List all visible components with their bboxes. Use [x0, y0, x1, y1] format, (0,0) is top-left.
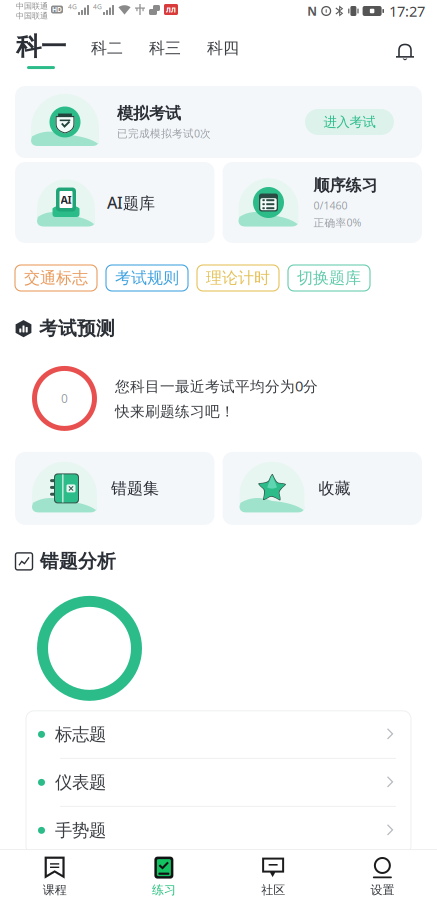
staticText: 中国联通 — [16, 1, 48, 11]
staticText: 切换题库 — [297, 268, 361, 288]
staticText: AI — [60, 192, 71, 207]
staticText: AI题库 — [107, 192, 155, 213]
staticText: 已完成模拟考试0次 — [117, 126, 211, 140]
staticText: 错题集 — [111, 479, 159, 498]
staticText: 设置 — [370, 883, 394, 897]
button[interactable]: 科四 — [194, 38, 252, 77]
staticText: 理论计时 — [206, 268, 270, 288]
staticText: 交通标志 — [24, 268, 88, 288]
staticText: 17:27 — [389, 1, 425, 21]
button[interactable]: Notifications — [394, 41, 437, 77]
staticText: 收藏 — [318, 479, 350, 498]
staticText: 0 — [61, 390, 68, 406]
staticText: 考试规则 — [115, 268, 179, 288]
button[interactable]: 练习 — [109, 852, 218, 897]
button[interactable]: 标志题 — [26, 711, 411, 758]
button[interactable]: 切换题库 — [288, 265, 370, 291]
staticText: 考试预测 — [39, 317, 115, 340]
staticText: 4G — [93, 2, 102, 11]
button[interactable]: 错题集 — [15, 452, 214, 525]
staticText: 课程 — [43, 883, 67, 897]
button[interactable]: 顺序练习 — [222, 162, 422, 243]
staticText: 正确率0% — [313, 215, 361, 229]
staticText: 社区 — [261, 883, 285, 897]
staticText: HD — [52, 5, 62, 14]
staticText: 您科目一最近考试平均分为0分 — [115, 376, 318, 396]
staticText: 中国联通 — [16, 11, 48, 21]
button[interactable]: 科一 — [0, 31, 78, 77]
button[interactable]: AI — [15, 162, 214, 243]
staticText: 科三 — [149, 38, 181, 58]
button[interactable]: 设置 — [328, 852, 437, 897]
staticText: 0/1460 — [313, 198, 347, 212]
button[interactable]: 模拟考试 — [15, 86, 422, 158]
staticText: 4G — [68, 2, 77, 11]
staticText: 手势题 — [55, 820, 106, 841]
staticText: 科二 — [91, 38, 123, 58]
button[interactable]: 考试规则 — [106, 265, 188, 291]
staticText: 科四 — [207, 38, 239, 58]
staticText: 仪表题 — [55, 772, 106, 793]
button[interactable]: 社区 — [218, 852, 328, 897]
staticText: 标志题 — [55, 724, 106, 745]
button[interactable]: 科三 — [136, 38, 194, 77]
staticText: 练习 — [152, 883, 176, 897]
staticText: 顺序练习 — [313, 175, 377, 195]
button[interactable]: 手势题 — [26, 807, 411, 854]
staticText: 错题分析 — [40, 550, 116, 573]
button[interactable]: 仪表题 — [26, 759, 411, 806]
button[interactable]: 收藏 — [222, 452, 422, 525]
staticText: 进入考试 — [323, 114, 375, 130]
staticText: N — [307, 3, 317, 19]
staticText: 快来刷题练习吧！ — [115, 403, 235, 421]
button[interactable]: 课程 — [0, 852, 109, 897]
button[interactable]: 交通标志 — [15, 265, 97, 291]
button[interactable]: 理论计时 — [197, 265, 279, 291]
staticText: лл — [166, 4, 176, 15]
staticText: 科一 — [16, 31, 66, 62]
button[interactable]: 科二 — [78, 38, 136, 77]
staticText: 模拟考试 — [117, 104, 181, 123]
